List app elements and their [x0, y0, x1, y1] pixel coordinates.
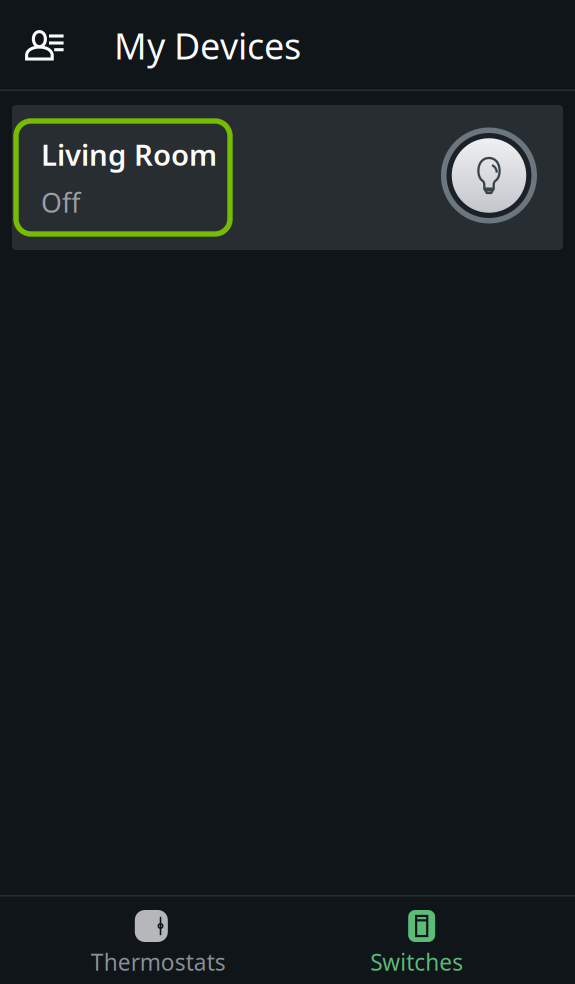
button[interactable]: Switches [317, 895, 517, 984]
staticText: Thermostats [91, 947, 226, 977]
staticText: Off [41, 185, 80, 220]
staticText: Switches [370, 947, 463, 977]
staticText: My Devices [114, 22, 301, 69]
button[interactable]: Living Room [16, 121, 230, 234]
button[interactable]: Contacts [17, 17, 73, 73]
button[interactable]: My Devices [73, 17, 317, 73]
button[interactable]: Thermostats [58, 895, 258, 984]
staticText: Living Room [41, 135, 217, 174]
button[interactable]: Toggle Living Room [441, 129, 537, 225]
